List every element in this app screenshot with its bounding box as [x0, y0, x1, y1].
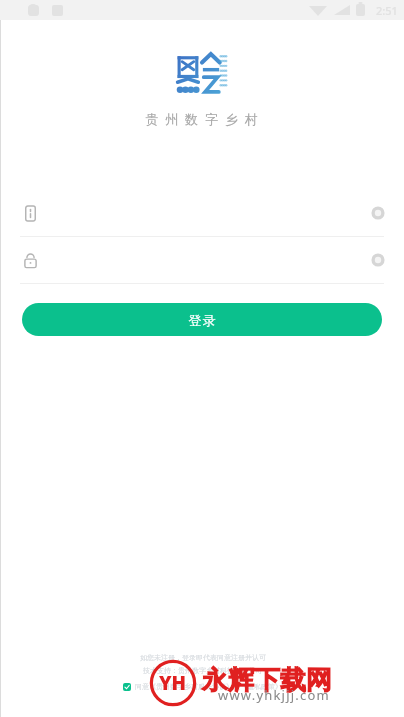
staticText: 贵 州 数 字 乡 村	[145, 110, 260, 128]
staticText: 如您未注册，登录即代表同意注册并认可	[140, 653, 266, 662]
staticText: 技术支持：贵州数字乡村科技有限公司	[143, 666, 262, 675]
button[interactable]: 同意《贵州数字乡村服务协议》及《隐私政策》	[123, 682, 282, 691]
staticText: YH	[159, 670, 187, 696]
button[interactable]: Clear	[370, 252, 386, 268]
staticText: 登录	[188, 312, 216, 328]
button[interactable]: 登录	[22, 303, 382, 336]
button[interactable]: Clear	[0, 190, 404, 236]
button[interactable]: Clear	[0, 237, 404, 283]
staticText: 同意《贵州数字乡村服务协议》及《隐私政策》	[135, 682, 282, 691]
staticText: www.yhkjjj.com	[218, 686, 330, 704]
staticText: 2:51	[376, 3, 398, 18]
button[interactable]: Clear	[370, 205, 386, 221]
staticText: 永辉下载网	[202, 664, 332, 697]
